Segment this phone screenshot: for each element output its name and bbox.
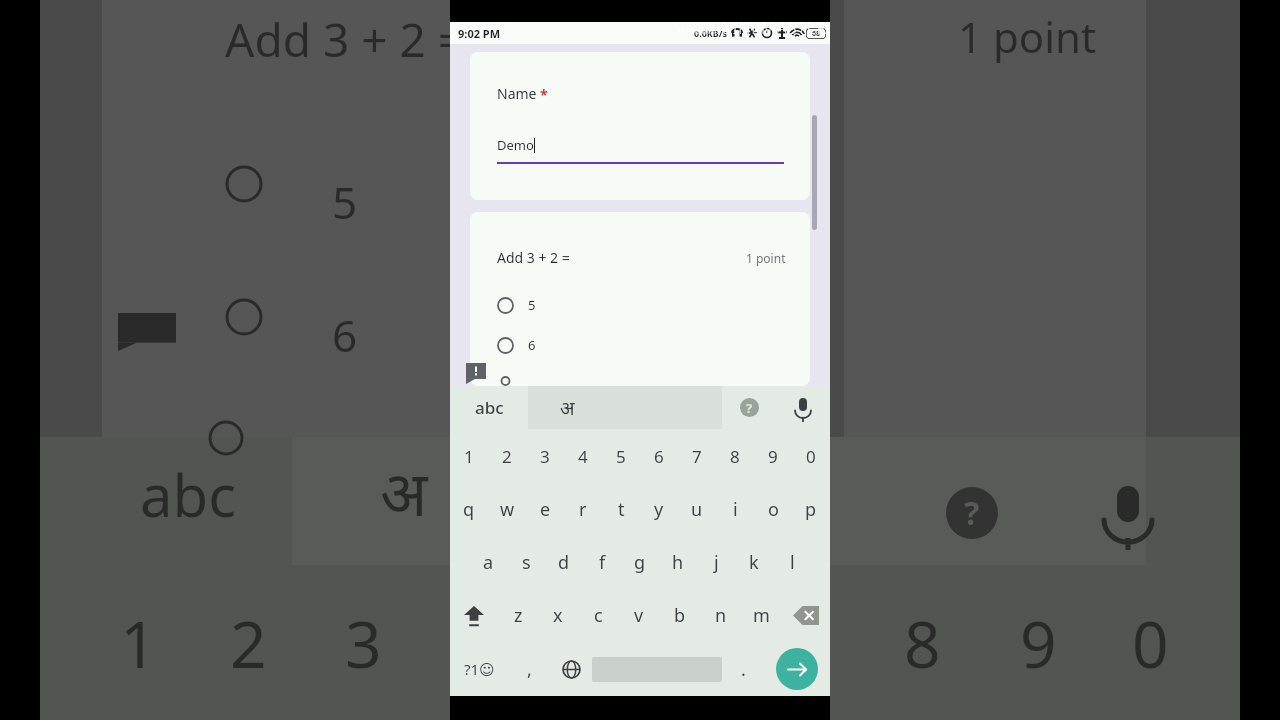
button[interactable]: k [735,536,773,589]
button[interactable]: Add 3 + 2 = [470,212,810,386]
button[interactable]: 6 [640,429,678,483]
button[interactable]: 5 [497,296,786,314]
button[interactable]: e [526,483,564,536]
staticText: m [753,603,770,628]
button[interactable]: Voice input [776,386,830,429]
button[interactable]: q [450,483,488,536]
staticText: 0 [806,445,816,468]
staticText: 4 [578,445,588,468]
staticText: 0.0KB/s [694,27,728,39]
staticText: 3 [540,445,550,468]
button[interactable]: Shift [450,589,498,642]
staticText: d [558,550,570,575]
button[interactable]: b [659,589,700,642]
button[interactable]: j [697,536,735,589]
staticText: r [579,497,587,522]
staticText: अ [560,395,575,421]
staticText: 0 [1132,600,1169,687]
staticText: Add 3 + 2 = [225,8,465,71]
staticText: i [733,497,738,522]
button[interactable]: c [578,589,618,642]
staticText: z [514,603,523,628]
staticText: e [540,497,551,522]
staticText: 8 [904,600,941,687]
button[interactable]: f [583,536,621,589]
button[interactable]: z [498,589,538,642]
button[interactable]: n [700,589,741,642]
staticText: h [672,550,684,575]
button[interactable]: . [722,642,764,696]
button[interactable]: u [678,483,716,536]
button[interactable]: 2 [488,429,526,483]
staticText: 1 [464,445,474,468]
staticText: Add 3 + 2 = [497,248,570,267]
button[interactable]: a [469,536,507,589]
staticText: 1 point [958,8,1097,65]
button[interactable]: abc [450,386,528,429]
button[interactable]: 0 [792,429,830,483]
button[interactable]: अ [528,386,722,429]
staticText: l [790,550,795,575]
button[interactable]: 7 [678,429,716,483]
staticText: Name [497,84,537,103]
staticText: ? [746,399,753,417]
staticText: a [483,550,494,575]
button[interactable]: l [773,536,811,589]
button[interactable]: t [602,483,640,536]
button[interactable]: ?1☺ [450,642,508,696]
staticText: w [500,497,515,522]
button[interactable]: 6 [497,336,786,354]
button[interactable]: p [792,483,830,536]
button[interactable]: d [545,536,583,589]
button[interactable]: Help [722,386,776,429]
button[interactable]: g [621,536,659,589]
staticText: 2 [230,600,267,687]
staticText: KINEMASTER [722,16,828,38]
button[interactable]: 3 [526,429,564,483]
staticText: o [768,497,779,522]
button[interactable]: Name [470,52,810,200]
button[interactable]: 1 [450,429,488,483]
staticText: 68 [812,29,821,39]
button[interactable]: 9 [754,429,792,483]
button[interactable]: r [564,483,602,536]
staticText: c [594,603,603,628]
button[interactable]: h [659,536,697,589]
staticText: f [599,550,606,575]
staticText: abc [140,455,237,534]
button[interactable]: i [716,483,754,536]
button[interactable]: , [508,642,550,696]
button[interactable]: s [507,536,545,589]
button[interactable]: Backspace [782,589,830,642]
staticText: 7 [692,445,702,468]
button[interactable]: Change language [550,642,592,696]
staticText: 6 [332,305,358,365]
staticText: 5 [528,296,536,314]
button[interactable]: Enter [776,648,818,690]
staticText: b [674,603,686,628]
button[interactable]: 4 [564,429,602,483]
staticText: 6 [528,336,536,354]
staticText: n [715,603,727,628]
staticText: t [618,497,625,522]
button[interactable]: 8 [716,429,754,483]
button[interactable]: m [741,589,782,642]
button[interactable]: y [640,483,678,536]
staticText: j [714,550,719,575]
staticText: Made with [677,25,720,36]
button[interactable]: v [618,589,659,642]
staticText: k [749,550,759,575]
staticText: 5 [332,172,358,232]
button[interactable]: w [488,483,526,536]
staticText: , [527,657,532,682]
button[interactable]: o [754,483,792,536]
staticText: 5 [616,445,626,468]
button[interactable]: 5 [602,429,640,483]
staticText: * [540,85,548,104]
staticText: q [463,497,475,522]
staticText: अ [380,450,428,534]
staticText: x [553,603,563,628]
button[interactable]: x [538,589,578,642]
staticText: v [634,603,644,628]
